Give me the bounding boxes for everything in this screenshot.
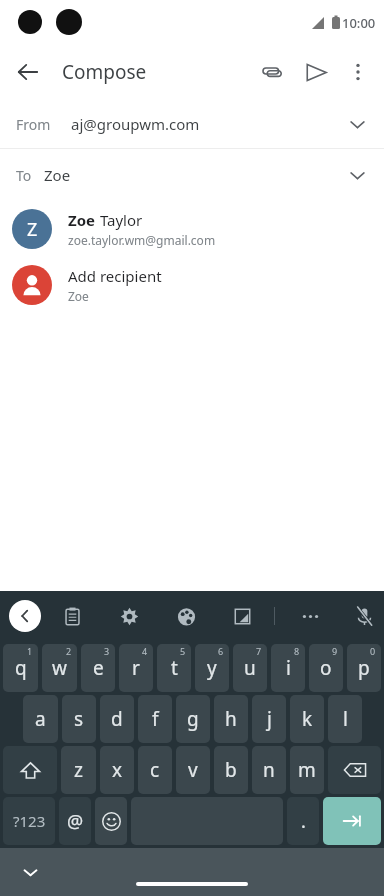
button[interactable]: Theme: [168, 598, 204, 634]
staticText: q: [15, 655, 27, 681]
staticText: 2: [66, 645, 72, 657]
staticText: aj@groupwm.com: [71, 114, 200, 134]
button[interactable]: q: [3, 644, 38, 692]
button[interactable]: r: [119, 644, 153, 692]
button[interactable]: From: [0, 100, 384, 148]
staticText: w: [52, 655, 67, 681]
button[interactable]: a: [23, 695, 58, 743]
staticText: y: [207, 655, 217, 681]
button[interactable]: Microphone off: [346, 598, 382, 634]
staticText: Zoe: [44, 165, 71, 185]
button[interactable]: .: [287, 797, 319, 845]
staticText: r: [132, 655, 140, 681]
staticText: Compose: [62, 59, 147, 85]
button[interactable]: j: [252, 695, 286, 743]
staticText: 8: [294, 645, 300, 657]
button[interactable]: To: [0, 149, 384, 201]
staticText: i: [286, 655, 291, 681]
staticText: n: [263, 757, 275, 783]
staticText: zoe.taylor.wm@gmail.com: [68, 232, 216, 248]
button[interactable]: f: [138, 695, 172, 743]
staticText: d: [111, 706, 123, 732]
staticText: e: [93, 655, 104, 681]
button[interactable]: v: [176, 746, 210, 794]
staticText: z: [74, 757, 83, 783]
button[interactable]: i: [271, 644, 305, 692]
button[interactable]: Attach file: [250, 50, 294, 94]
staticText: p: [358, 655, 370, 681]
button[interactable]: s: [62, 695, 96, 743]
staticText: 6: [218, 645, 224, 657]
staticText: o: [320, 655, 332, 681]
button[interactable]: x: [100, 746, 134, 794]
button[interactable]: More: [292, 598, 328, 634]
button[interactable]: Resize keyboard: [224, 598, 260, 634]
staticText: c: [150, 757, 160, 783]
button[interactable]: Settings: [111, 598, 147, 634]
staticText: Taylor: [96, 210, 143, 230]
staticText: k: [302, 706, 313, 732]
staticText: @: [67, 809, 84, 834]
button[interactable]: Clipboard: [54, 598, 90, 634]
staticText: m: [298, 757, 316, 783]
button[interactable]: n: [252, 746, 286, 794]
button[interactable]: k: [290, 695, 324, 743]
staticText: t: [171, 655, 178, 681]
button[interactable]: Hide keyboard: [12, 854, 48, 890]
button[interactable]: e: [81, 644, 115, 692]
staticText: b: [225, 757, 237, 783]
staticText: Add recipient: [68, 266, 162, 286]
staticText: 10:00: [342, 14, 376, 32]
staticText: u: [244, 655, 256, 681]
staticText: 4: [142, 645, 148, 657]
button[interactable]: Send: [294, 50, 338, 94]
staticText: g: [187, 706, 199, 732]
button[interactable]: b: [214, 746, 248, 794]
staticText: To: [16, 166, 32, 185]
button[interactable]: p: [347, 644, 381, 692]
staticText: l: [343, 706, 348, 732]
staticText: Z: [27, 217, 38, 242]
button[interactable]: Add recipient: [0, 257, 384, 313]
button[interactable]: Expand: [9, 600, 41, 632]
staticText: j: [267, 706, 272, 732]
button[interactable]: [323, 797, 381, 845]
button[interactable]: Back: [8, 52, 48, 92]
staticText: x: [112, 757, 123, 783]
button[interactable]: m: [290, 746, 324, 794]
staticText: ?123: [13, 811, 46, 831]
staticText: .: [301, 809, 306, 834]
staticText: 9: [332, 645, 338, 657]
button[interactable]: t: [157, 644, 191, 692]
staticText: 7: [256, 645, 262, 657]
button[interactable]: o: [309, 644, 343, 692]
staticText: f: [152, 706, 159, 732]
staticText: a: [35, 706, 46, 732]
button[interactable]: g: [176, 695, 210, 743]
button[interactable]: Z: [0, 201, 384, 257]
staticText: 1: [27, 645, 33, 657]
button[interactable]: w: [42, 644, 77, 692]
button[interactable]: z: [61, 746, 96, 794]
staticText: Zoe: [68, 210, 96, 230]
button[interactable]: u: [233, 644, 267, 692]
button[interactable]: y: [195, 644, 229, 692]
button[interactable]: l: [328, 695, 362, 743]
staticText: h: [225, 706, 237, 732]
button[interactable]: [328, 746, 381, 794]
button[interactable]: c: [138, 746, 172, 794]
button[interactable]: h: [214, 695, 248, 743]
button[interactable]: More options: [338, 52, 378, 92]
staticText: 5: [180, 645, 186, 657]
button[interactable]: @: [59, 797, 91, 845]
staticText: From: [16, 115, 51, 134]
button[interactable]: d: [100, 695, 134, 743]
staticText: Zoe: [68, 288, 89, 304]
staticText: v: [188, 757, 198, 783]
staticText: s: [74, 706, 84, 732]
button[interactable]: ?123: [3, 797, 55, 845]
button[interactable]: [3, 746, 57, 794]
button[interactable]: [95, 797, 127, 845]
staticText: 0: [370, 645, 376, 657]
